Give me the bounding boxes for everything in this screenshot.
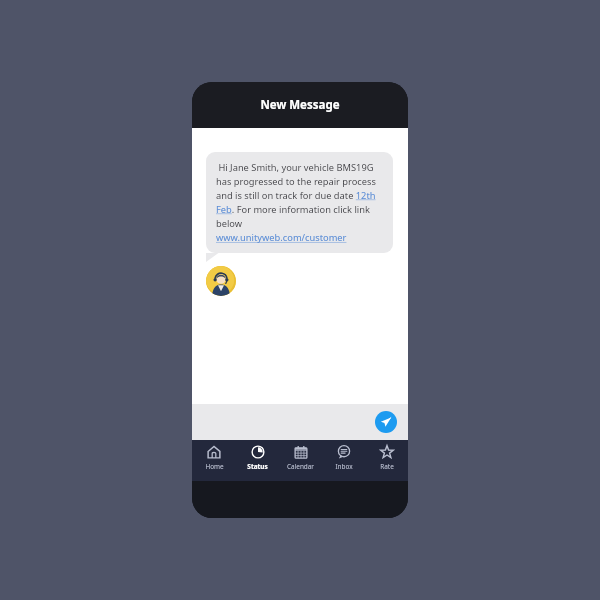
button[interactable]: Status <box>236 440 279 481</box>
button[interactable]: Calendar <box>279 440 322 481</box>
button[interactable]: Rate <box>365 440 408 481</box>
button[interactable]: Inbox <box>322 440 365 481</box>
staticText: Calendar <box>287 462 314 471</box>
button[interactable]: Hi Jane Smith, your vehicle BMS19G has p… <box>206 152 393 253</box>
staticText: Rate <box>380 462 394 471</box>
button[interactable]: Agent avatar <box>206 266 236 296</box>
staticText: Home <box>205 462 224 471</box>
staticText: Hi Jane Smith, your vehicle BMS19G has p… <box>216 161 383 244</box>
button[interactable]: Home <box>192 440 236 481</box>
staticText: Inbox <box>335 462 353 471</box>
staticText: New Message <box>260 97 340 113</box>
button[interactable]: Send <box>375 411 397 433</box>
staticText: Status <box>247 462 268 471</box>
